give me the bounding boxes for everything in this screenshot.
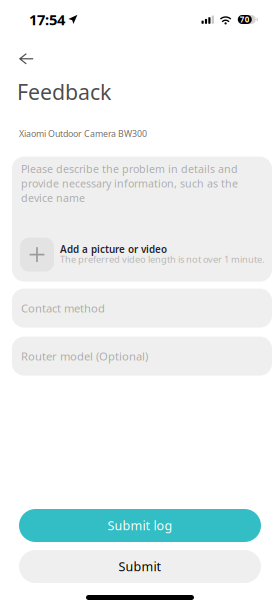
button[interactable]: Router model (Optional) [12,337,272,376]
button[interactable]: Contact method [12,289,272,328]
staticText: 17:54 [29,9,65,29]
staticText: Router model (Optional) [21,348,148,364]
staticText: The preferred video length is not over 1… [60,253,265,265]
staticText: Add a picture or video [60,242,167,256]
staticText: Please describe the problem in details a… [21,162,238,205]
staticText: Submit log [107,517,172,534]
button[interactable]: Add a picture or video [12,238,272,282]
button[interactable]: Back [0,39,48,73]
staticText: Feedback [17,77,111,106]
button[interactable]: Submit [0,542,261,583]
staticText: Xiaomi Outdoor Camera BW300 [19,128,147,140]
staticText: Submit [118,558,161,575]
staticText: Contact method [21,300,105,316]
staticText: 70 [240,14,250,25]
button[interactable]: Submit log [0,509,261,542]
